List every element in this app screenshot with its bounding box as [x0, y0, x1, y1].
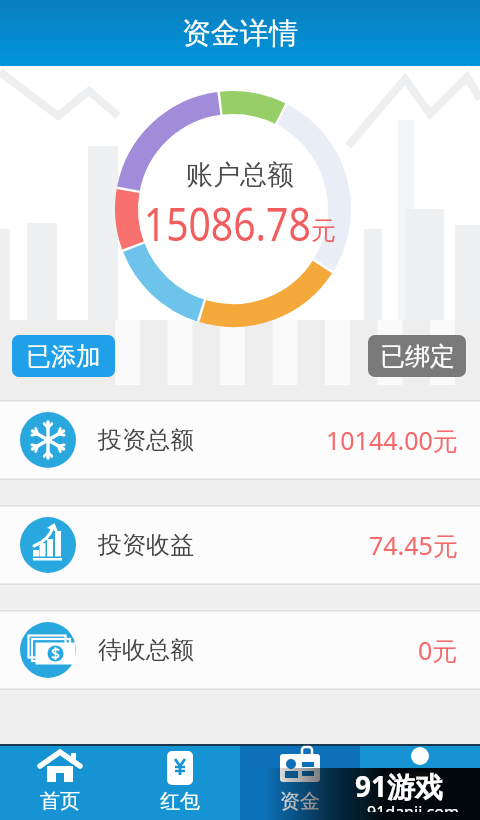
staticText: 资金详情 [182, 15, 298, 52]
staticText: 74.45元 [369, 528, 458, 562]
staticText: 资金 [280, 789, 320, 814]
button[interactable]: 待收总额 [0, 610, 480, 690]
staticText: 待收总额 [98, 635, 194, 665]
button[interactable]: 已绑定 [368, 335, 466, 377]
staticText: 已添加 [26, 341, 101, 372]
button[interactable]: 资金 [240, 746, 360, 820]
staticText: 10144.00元 [326, 423, 458, 457]
staticText: 元 [311, 215, 336, 246]
button[interactable]: 红包 [120, 746, 240, 820]
staticText: 红包 [160, 789, 200, 814]
button[interactable]: 首页 [0, 746, 120, 820]
staticText: 投资收益 [98, 530, 194, 560]
button[interactable]: 已添加 [12, 335, 115, 377]
staticText: 15086.78 [144, 192, 311, 255]
staticText: 投资总额 [98, 425, 194, 455]
staticText: 首页 [40, 789, 80, 814]
staticText: 91danji.com [367, 801, 459, 812]
staticText: 0元 [418, 633, 458, 667]
button[interactable] [360, 746, 480, 820]
button[interactable]: 投资总额 [0, 400, 480, 480]
button[interactable]: 资金详情 [0, 0, 480, 66]
button[interactable]: 投资收益 [0, 505, 480, 585]
staticText: 已绑定 [380, 341, 455, 372]
staticText: 91游戏 [355, 767, 444, 805]
staticText: 账户总额 [186, 158, 294, 192]
